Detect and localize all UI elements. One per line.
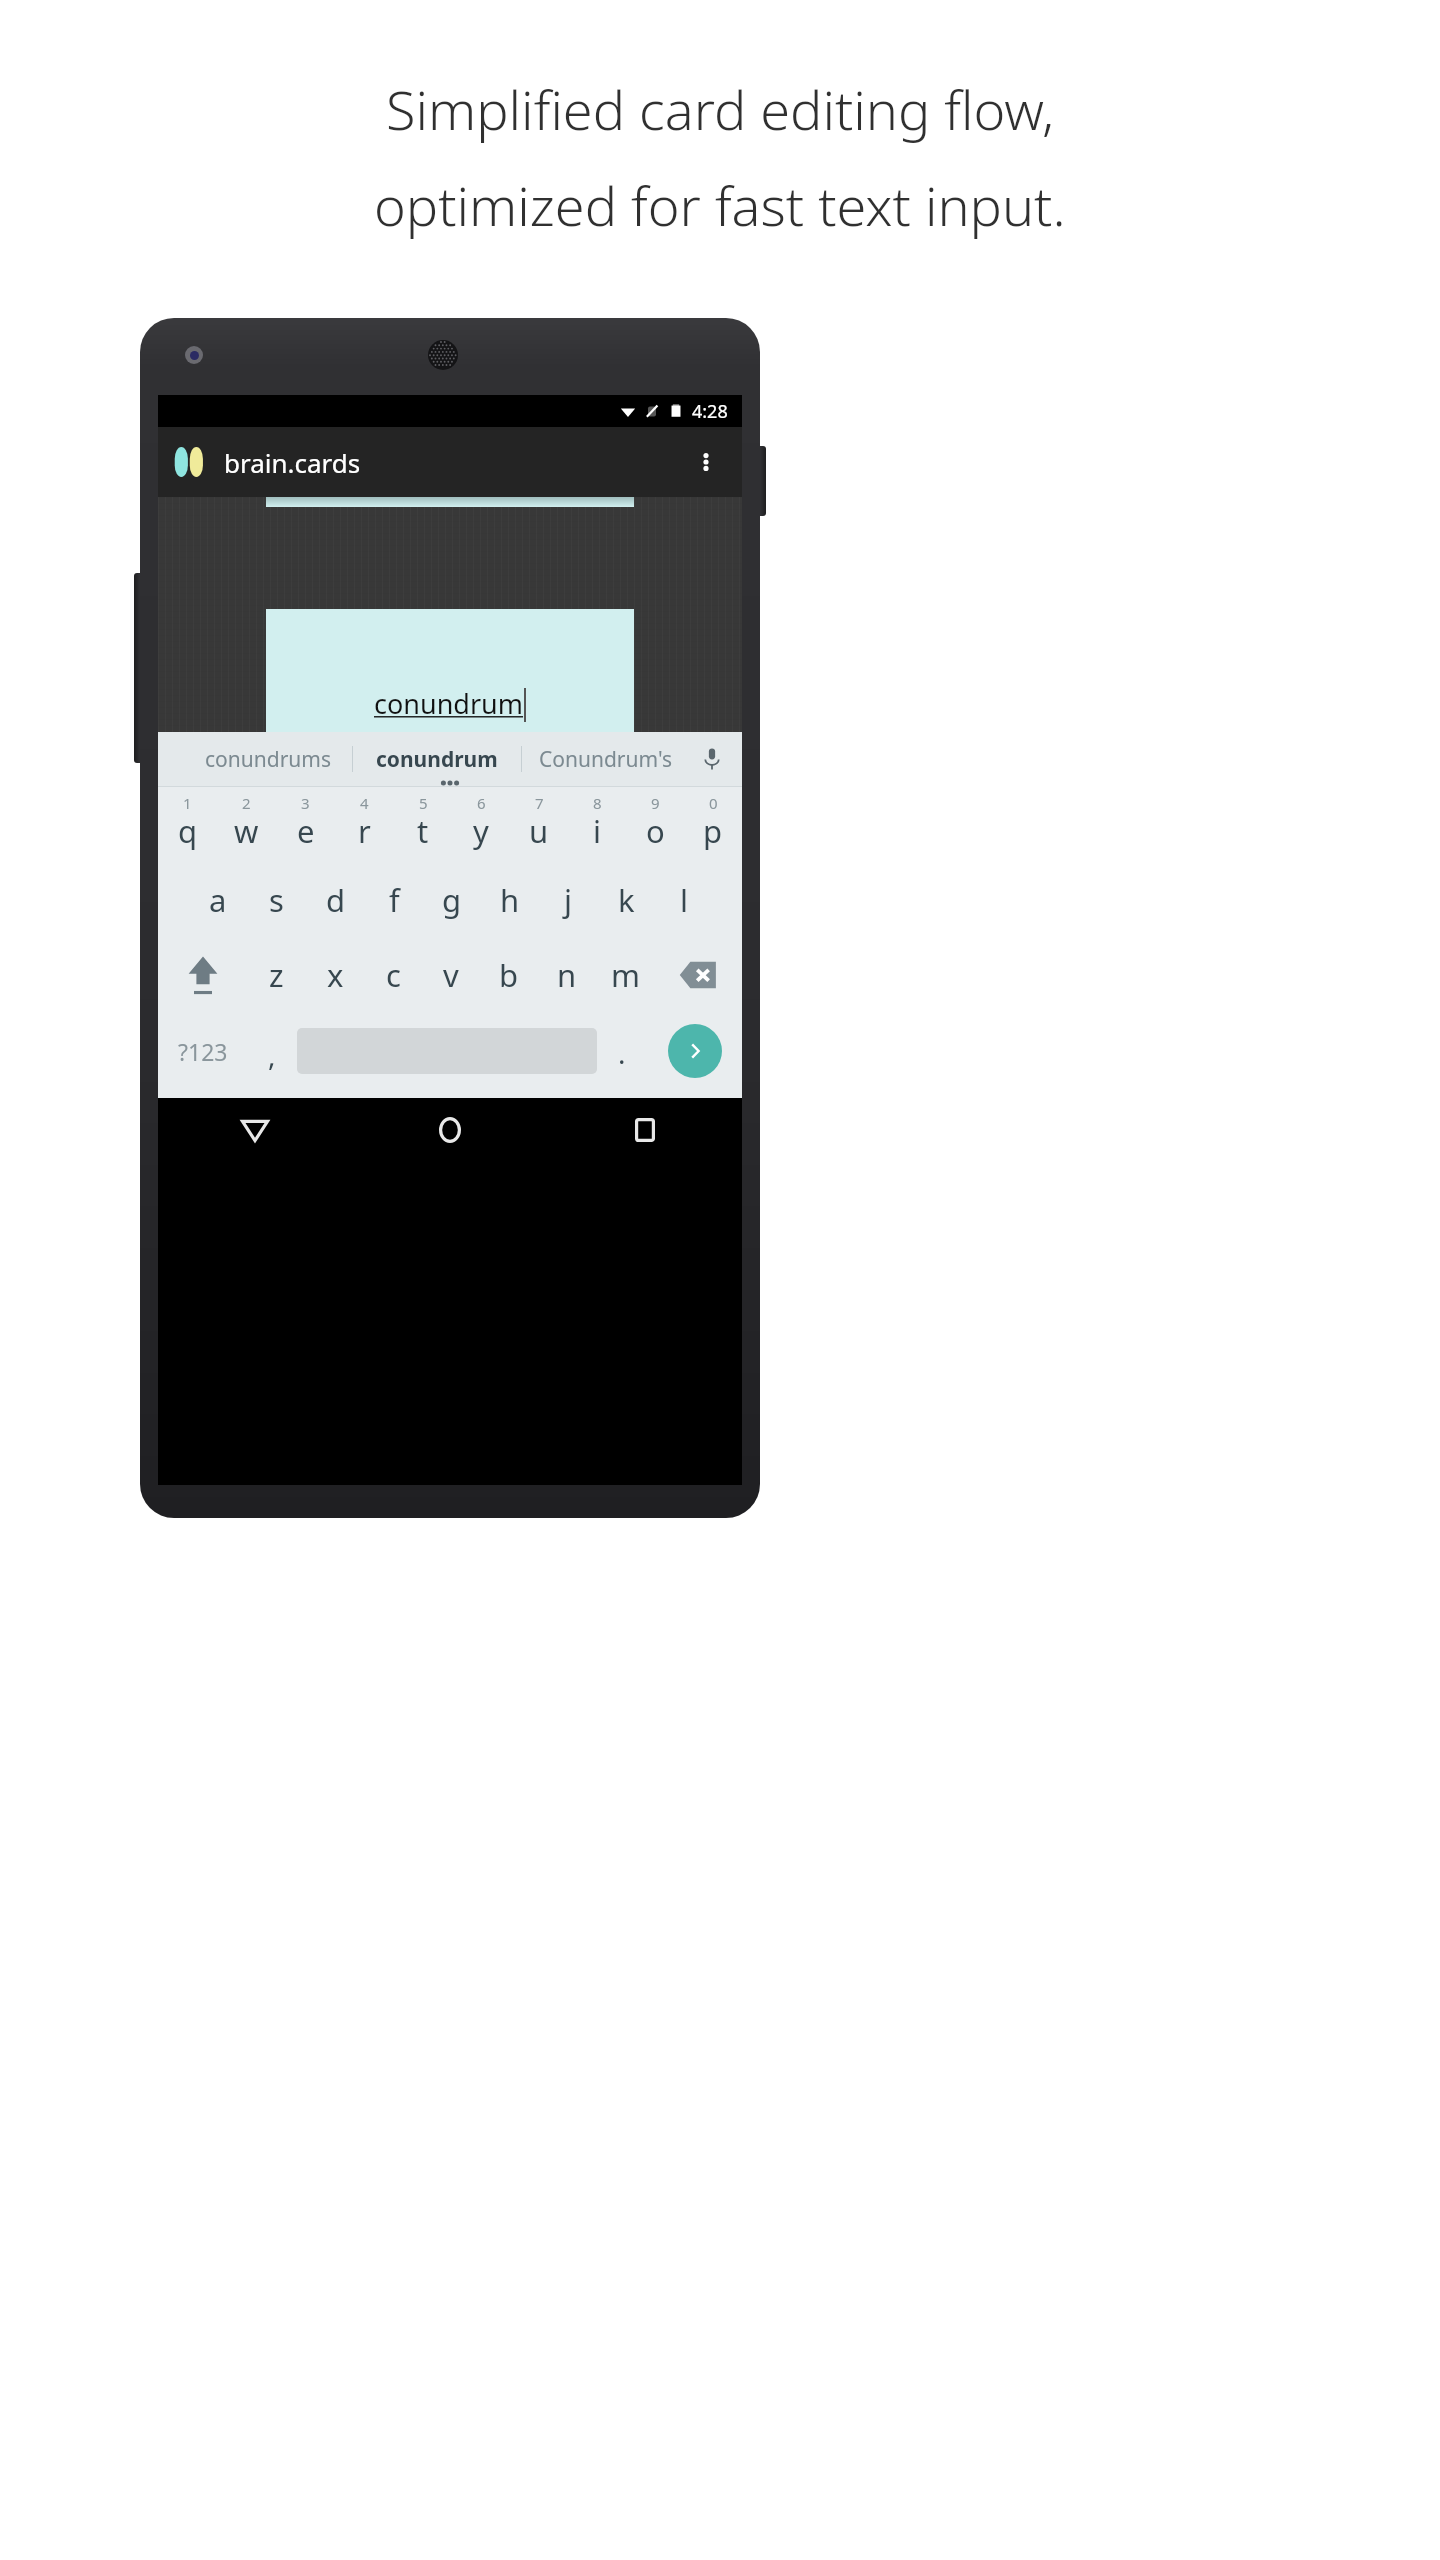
staticText: y bbox=[473, 810, 489, 852]
staticText: g bbox=[442, 879, 462, 921]
staticText: r bbox=[358, 810, 371, 852]
button[interactable]: c bbox=[364, 937, 422, 1012]
staticText: 4 bbox=[360, 793, 369, 813]
staticText: , bbox=[268, 1036, 276, 1074]
staticText: p bbox=[703, 810, 723, 852]
staticText: i bbox=[593, 810, 601, 852]
staticText: conundrums bbox=[205, 745, 331, 774]
staticText: h bbox=[500, 879, 520, 921]
button[interactable]: f bbox=[365, 862, 423, 937]
staticText: 3 bbox=[301, 793, 310, 813]
staticText: ?123 bbox=[178, 1036, 228, 1067]
button[interactable]: conundrum bbox=[353, 732, 521, 786]
staticText: 1 bbox=[183, 793, 192, 813]
button[interactable]: d bbox=[306, 862, 365, 937]
button[interactable]: s bbox=[247, 862, 306, 937]
staticText: q bbox=[178, 810, 198, 852]
button[interactable]: b bbox=[480, 937, 538, 1012]
staticText: n bbox=[557, 954, 577, 996]
button[interactable]: Home bbox=[352, 1098, 547, 1162]
staticText: l bbox=[680, 879, 688, 921]
button[interactable]: j bbox=[539, 862, 597, 937]
staticText: v bbox=[443, 954, 459, 996]
button[interactable]: 5 bbox=[394, 787, 452, 862]
button[interactable]: x bbox=[306, 937, 364, 1012]
button[interactable]: l bbox=[655, 862, 713, 937]
staticText: 4:28 bbox=[692, 399, 728, 424]
staticText: e bbox=[297, 810, 315, 852]
button[interactable]: z bbox=[247, 937, 306, 1012]
button[interactable]: k bbox=[597, 862, 655, 937]
button[interactable]: Recent apps bbox=[547, 1098, 742, 1162]
staticText: o bbox=[646, 810, 665, 852]
button[interactable]: Voice input bbox=[690, 732, 734, 786]
staticText: s bbox=[269, 879, 284, 921]
staticText: 0 bbox=[709, 793, 718, 813]
button[interactable]: conundrums bbox=[184, 732, 352, 786]
staticText: m bbox=[611, 954, 640, 996]
staticText: Simplified card editing flow, bbox=[386, 72, 1055, 146]
staticText: 7 bbox=[535, 793, 544, 813]
button[interactable]: 4 bbox=[335, 787, 394, 862]
button[interactable]: h bbox=[481, 862, 539, 937]
staticText: conundrum bbox=[374, 685, 524, 722]
staticText: f bbox=[389, 879, 400, 921]
button[interactable]: 2 bbox=[217, 787, 276, 862]
staticText: b bbox=[499, 954, 519, 996]
button[interactable]: 9 bbox=[626, 787, 684, 862]
button[interactable]: Backspace bbox=[654, 937, 742, 1012]
button[interactable]: ?123 bbox=[158, 1012, 247, 1090]
staticText: 8 bbox=[593, 793, 602, 813]
staticText: d bbox=[326, 879, 346, 921]
staticText: 5 bbox=[419, 793, 428, 813]
staticText: u bbox=[529, 810, 549, 852]
staticText: z bbox=[269, 954, 284, 996]
button[interactable]: , bbox=[247, 1012, 297, 1090]
button[interactable]: . bbox=[597, 1012, 647, 1090]
staticText: 2 bbox=[242, 793, 251, 813]
button[interactable]: More options bbox=[684, 440, 728, 484]
staticText: conundrum bbox=[376, 745, 498, 774]
button[interactable]: conundrum bbox=[266, 609, 634, 734]
staticText: brain.cards bbox=[224, 445, 361, 480]
button[interactable]: n bbox=[538, 937, 596, 1012]
button[interactable]: Enter bbox=[668, 1024, 722, 1078]
button[interactable]: m bbox=[596, 937, 654, 1012]
staticText: 6 bbox=[477, 793, 486, 813]
staticText: . bbox=[618, 1034, 626, 1072]
button[interactable]: a bbox=[188, 862, 247, 937]
staticText: c bbox=[386, 954, 401, 996]
staticText: optimized for fast text input. bbox=[374, 168, 1066, 242]
staticText: x bbox=[327, 954, 344, 996]
button[interactable]: 0 bbox=[684, 787, 742, 862]
staticText: w bbox=[234, 810, 259, 852]
staticText: a bbox=[209, 879, 227, 921]
button[interactable]: 6 bbox=[452, 787, 510, 862]
staticText: Conundrum's bbox=[539, 745, 673, 774]
button[interactable]: 3 bbox=[276, 787, 335, 862]
button[interactable]: g bbox=[423, 862, 481, 937]
button[interactable]: 1 bbox=[158, 787, 217, 862]
button[interactable]: 7 bbox=[510, 787, 568, 862]
button[interactable]: v bbox=[422, 937, 480, 1012]
staticText: 9 bbox=[651, 793, 660, 813]
button[interactable]: Shift bbox=[158, 937, 247, 1012]
staticText: k bbox=[618, 879, 635, 921]
button[interactable]: Conundrum's bbox=[522, 732, 690, 786]
staticText: t bbox=[417, 810, 429, 852]
staticText: j bbox=[564, 879, 572, 921]
button[interactable]: 8 bbox=[568, 787, 626, 862]
button[interactable]: Back bbox=[158, 1098, 352, 1162]
